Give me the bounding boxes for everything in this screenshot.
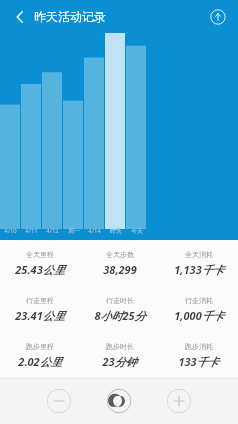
button[interactable]: Increase: [166, 388, 192, 414]
button[interactable]: 行走时长: [80, 286, 159, 332]
button[interactable]: 全天步数: [80, 240, 159, 286]
staticText: 8小时25分: [94, 308, 146, 323]
button[interactable]: 周一: [63, 227, 84, 235]
staticText: 跑步时长: [106, 342, 134, 351]
button[interactable]: 4/11: [21, 227, 42, 235]
button[interactable]: 昨天: [105, 227, 126, 235]
staticText: 行走消耗: [185, 296, 213, 305]
button[interactable]: 跑步里程: [0, 332, 80, 378]
button[interactable]: 行走消耗: [159, 286, 238, 332]
button[interactable]: 4/12: [42, 227, 63, 235]
staticText: 4/12: [46, 227, 59, 235]
staticText: 25.43公里: [15, 262, 65, 277]
button[interactable]: Back: [8, 5, 32, 29]
staticText: 跑步里程: [26, 342, 54, 351]
staticText: 全天里程: [26, 250, 54, 259]
staticText: 1,133千卡: [174, 262, 224, 277]
staticText: 行走时长: [106, 296, 134, 305]
staticText: 全天消耗: [185, 250, 213, 259]
button[interactable]: 今天: [126, 227, 147, 235]
staticText: 2.02公里: [18, 354, 62, 369]
staticText: 周一: [68, 227, 80, 235]
staticText: 4/10: [4, 227, 17, 235]
staticText: 昨天: [110, 227, 122, 235]
button[interactable]: 全天消耗: [159, 240, 238, 286]
staticText: 38,299: [103, 262, 137, 277]
button[interactable]: 跑步时长: [80, 332, 159, 378]
staticText: 昨天活动记录: [34, 9, 106, 24]
staticText: 4/14: [88, 227, 101, 235]
staticText: 133千卡: [178, 354, 219, 369]
staticText: 23分钟: [102, 354, 137, 369]
button[interactable]: 4/10: [0, 227, 21, 235]
button[interactable]: Share: [206, 5, 230, 29]
button[interactable]: Decrease: [46, 388, 72, 414]
button[interactable]: 4/14: [84, 227, 105, 235]
staticText: 今天: [131, 227, 143, 235]
button[interactable]: 全天里程: [0, 240, 80, 286]
staticText: 跑步消耗: [185, 342, 213, 351]
button[interactable]: 行走里程: [0, 286, 80, 332]
button[interactable]: Sleep: [106, 388, 132, 414]
staticText: 行走里程: [26, 296, 54, 305]
staticText: 全天步数: [106, 250, 134, 259]
staticText: 4/11: [25, 227, 38, 235]
button[interactable]: 跑步消耗: [159, 332, 238, 378]
staticText: 1,000千卡: [174, 308, 224, 323]
staticText: 23.41公里: [15, 308, 65, 323]
